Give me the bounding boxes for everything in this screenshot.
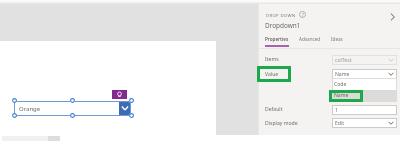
staticText: Items — [265, 56, 279, 63]
button[interactable]: Expand panel — [387, 11, 398, 22]
staticText: Ideas — [331, 36, 343, 42]
button[interactable]: Ideas — [331, 36, 343, 45]
button[interactable]: colTest — [332, 55, 397, 65]
staticText: DROP DOWN — [266, 12, 296, 18]
button[interactable]: Name — [332, 69, 397, 79]
staticText: Code — [334, 81, 347, 88]
staticText: Edit — [335, 120, 345, 127]
staticText: 1 — [335, 107, 338, 114]
staticText: Display mode — [265, 120, 298, 127]
button[interactable]: Properties — [265, 36, 289, 47]
staticText: Advanced — [299, 36, 321, 42]
button[interactable]: Help — [299, 11, 306, 18]
button[interactable]: Advanced — [299, 36, 321, 45]
staticText: ? — [302, 12, 304, 18]
staticText: Default — [265, 106, 283, 113]
staticText: colTest — [335, 57, 352, 64]
button[interactable]: 1 — [332, 105, 397, 115]
staticText: Dropdown1 — [265, 21, 301, 30]
button[interactable]: Value — [257, 66, 291, 82]
button[interactable] — [329, 90, 363, 102]
button[interactable]: Idea suggestion — [112, 90, 127, 99]
button[interactable]: Orange — [14, 101, 131, 116]
staticText: Value — [265, 71, 279, 78]
staticText: Properties — [265, 36, 289, 42]
button[interactable]: Edit — [332, 118, 397, 128]
staticText: Name — [334, 92, 349, 99]
staticText: Name — [335, 71, 350, 78]
staticText: Orange — [19, 105, 41, 113]
